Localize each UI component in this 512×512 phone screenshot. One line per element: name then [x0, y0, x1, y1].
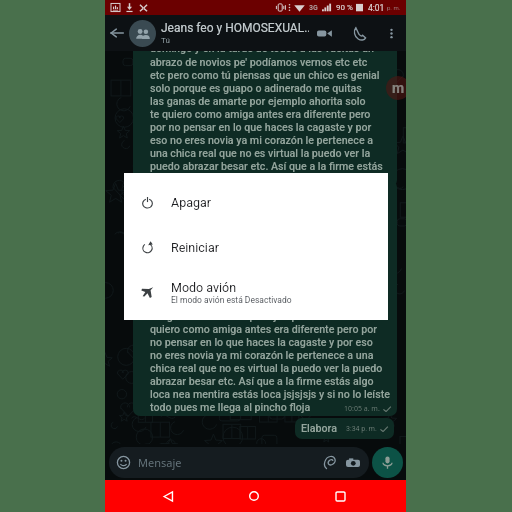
button[interactable]: Home	[241, 483, 267, 509]
button[interactable]: Jeans feo y HOMOSEXUAL...	[161, 21, 309, 45]
staticText: las ganas de amarte por ejemplo ahorita …	[150, 310, 390, 414]
button[interactable]: Attach	[322, 455, 337, 470]
button[interactable]: Back	[105, 21, 129, 45]
staticText: domingo y en la tarde de todos a las vue…	[150, 42, 383, 185]
button[interactable]: Reiniciar	[124, 225, 388, 270]
staticText: Jeans feo y HOMOSEXUAL...	[161, 21, 309, 35]
button[interactable]: Camera	[346, 456, 360, 470]
button[interactable]: More options	[381, 23, 401, 43]
staticText: 10:05 a. m.	[344, 404, 380, 414]
button[interactable]: Voice message	[372, 447, 403, 478]
staticText: Elabora	[301, 422, 337, 435]
button[interactable]: Call	[348, 22, 370, 44]
button[interactable]: Recents	[327, 483, 353, 509]
staticText: Reiniciar	[171, 240, 219, 255]
staticText: Mensaje	[138, 455, 182, 470]
staticText: p. m.	[387, 4, 401, 11]
button[interactable]: Group photo	[129, 20, 156, 47]
button[interactable]: Mensaje	[109, 447, 369, 478]
staticText: m	[392, 80, 405, 96]
button[interactable]: Video call	[312, 21, 336, 45]
staticText: Modo avión	[171, 280, 237, 295]
staticText: Tú	[161, 36, 170, 45]
button[interactable]: Apagar	[124, 180, 388, 225]
staticText: El modo avión está Desactivado	[171, 295, 292, 305]
button[interactable]: Back	[155, 483, 181, 509]
staticText: 3:34 p. m.	[346, 425, 377, 433]
button[interactable]: Modo avión	[124, 270, 388, 315]
staticText: 4:01	[368, 3, 385, 13]
staticText: Apagar	[171, 195, 212, 210]
button[interactable]: Elabora	[295, 418, 394, 439]
staticText: 3G	[309, 4, 318, 12]
staticText: 90 %	[336, 3, 353, 12]
